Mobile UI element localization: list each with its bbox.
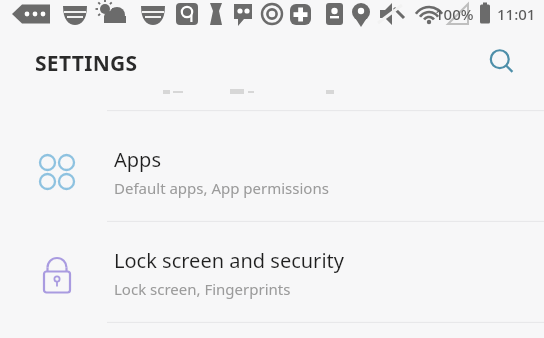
staticText: 11:01 (497, 4, 536, 24)
staticText: Apps (114, 146, 161, 173)
button[interactable]: Apps (0, 126, 544, 222)
staticText: Default apps, App permissions (114, 178, 329, 198)
button[interactable]: Search (480, 40, 524, 84)
staticText: Lock screen and security (114, 247, 344, 274)
staticText: Lock screen, Fingerprints (114, 279, 291, 299)
staticText: 100% (435, 4, 474, 24)
button[interactable]: Lock screen and security (0, 226, 544, 323)
staticText: SETTINGS (35, 49, 138, 78)
